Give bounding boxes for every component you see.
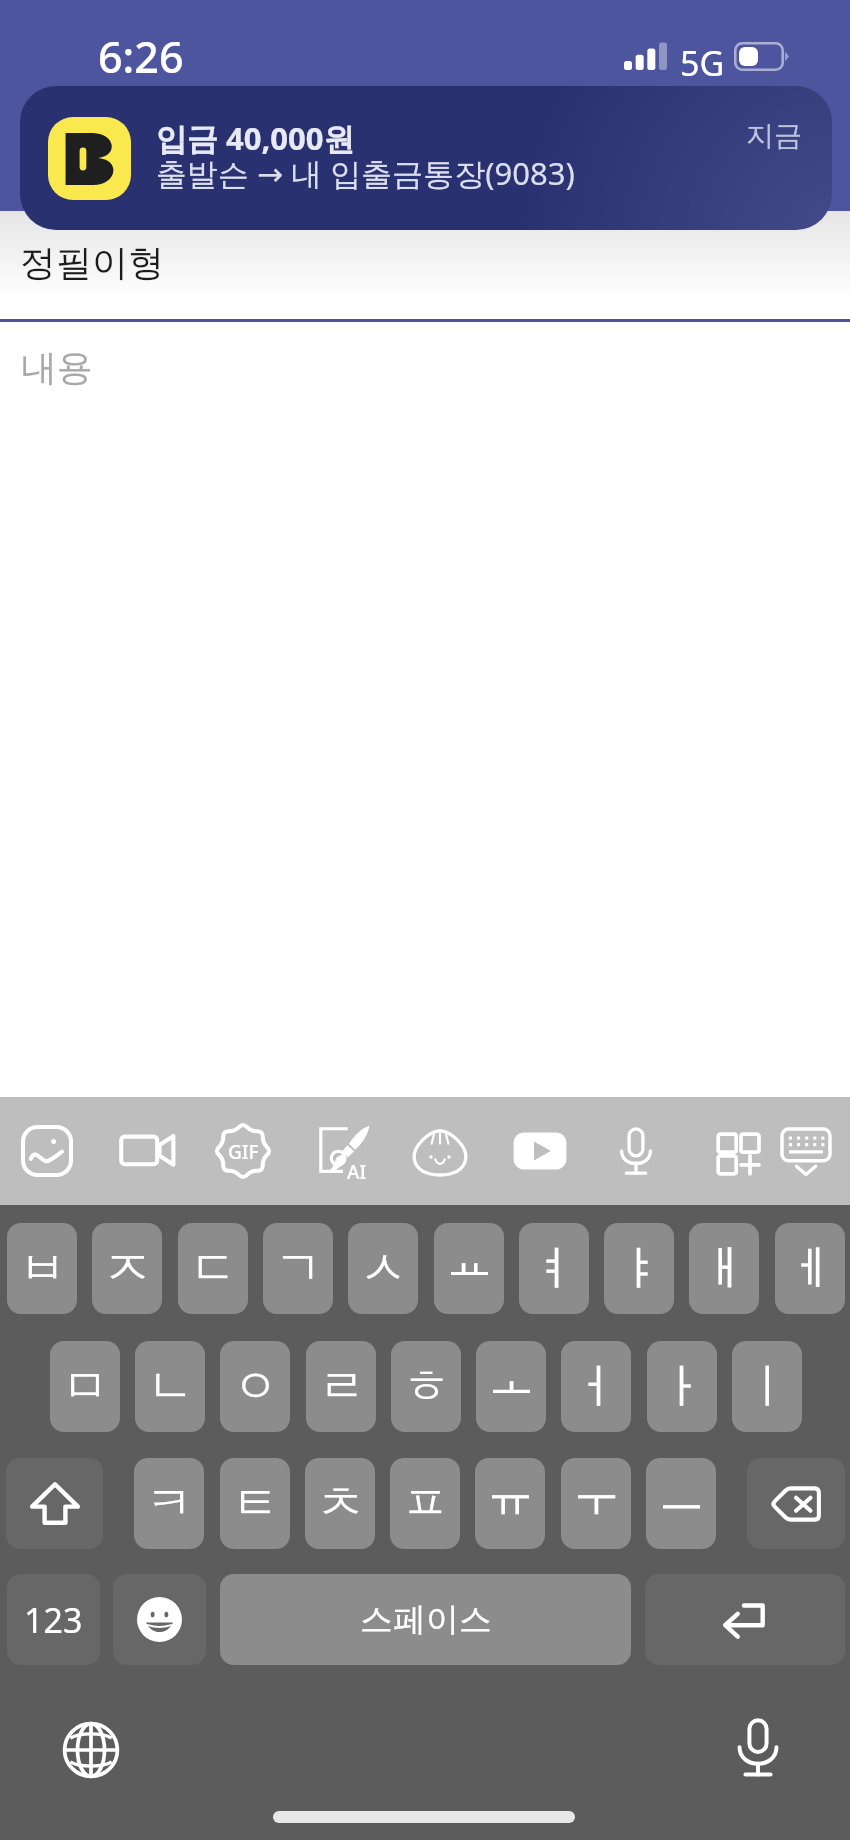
staticText: ㅕ [531, 1239, 578, 1298]
button[interactable]: ㅍ [390, 1458, 460, 1549]
staticText: ㅣ [744, 1357, 791, 1416]
button[interactable]: ㅜ [561, 1458, 631, 1549]
staticText: ㅐ [701, 1239, 748, 1298]
button[interactable]: AI drawing [305, 1109, 381, 1193]
button[interactable]: ㅏ [647, 1341, 717, 1432]
staticText: ㅂ [19, 1239, 66, 1298]
button[interactable]: ㄴ [135, 1341, 205, 1432]
button[interactable]: ㅣ [732, 1341, 802, 1432]
staticText: 내용 [21, 345, 93, 390]
button[interactable]: ㅅ [348, 1223, 418, 1314]
button[interactable]: ㅐ [689, 1223, 759, 1314]
staticText: ㅔ [787, 1239, 834, 1298]
staticText: ㄴ [147, 1357, 194, 1416]
button[interactable]: Photo [9, 1109, 85, 1193]
staticText: AI [347, 1159, 367, 1185]
staticText: ㅅ [360, 1239, 407, 1298]
button[interactable]: Change language [58, 1717, 124, 1783]
button[interactable]: ㅇ [220, 1341, 290, 1432]
button[interactable]: ㅠ [475, 1458, 545, 1549]
staticText: ㅋ [146, 1474, 193, 1533]
button[interactable]: Enter [645, 1574, 845, 1665]
staticText: ㅓ [573, 1357, 620, 1416]
button[interactable]: GIF [205, 1109, 281, 1193]
button[interactable]: 스페이스 [220, 1574, 631, 1665]
button[interactable]: ㅛ [434, 1223, 504, 1314]
button[interactable]: Voice input [723, 1713, 793, 1783]
button[interactable]: ㄱ [263, 1223, 333, 1314]
button[interactable]: Hide keyboard [768, 1109, 844, 1193]
button[interactable]: ㅁ [50, 1341, 120, 1432]
button[interactable]: ㅔ [775, 1223, 845, 1314]
staticText: ㅊ [317, 1474, 364, 1533]
button[interactable]: ㅊ [305, 1458, 375, 1549]
staticText: 123 [24, 1597, 83, 1643]
staticText: ㅛ [446, 1231, 493, 1290]
staticText: ㅜ [573, 1466, 620, 1525]
staticText: GIF [228, 1139, 259, 1165]
button[interactable]: Video clip [502, 1109, 578, 1193]
button[interactable]: ㅑ [604, 1223, 674, 1314]
staticText: ㄷ [190, 1239, 237, 1298]
button[interactable]: ㅕ [519, 1223, 589, 1314]
button[interactable]: ㅡ [646, 1458, 716, 1549]
button[interactable]: ㅈ [92, 1223, 162, 1314]
button[interactable]: Voice [598, 1109, 674, 1193]
staticText: ㅌ [232, 1474, 279, 1533]
staticText: ㅈ [104, 1239, 151, 1298]
button[interactable]: ㅓ [561, 1341, 631, 1432]
button[interactable]: Sticker [402, 1109, 478, 1193]
staticText: ㅑ [616, 1239, 663, 1298]
staticText: 입금 40,000원 [156, 117, 355, 159]
button[interactable]: More apps [697, 1109, 773, 1193]
button[interactable]: ㅗ [476, 1341, 546, 1432]
staticText: 5G [680, 40, 725, 86]
staticText: ㅁ [62, 1357, 109, 1416]
staticText: ㅏ [659, 1357, 706, 1416]
button[interactable]: ㅎ [391, 1341, 461, 1432]
button[interactable]: Emoji [113, 1574, 206, 1665]
staticText: 정필이형 [20, 240, 164, 285]
button[interactable]: ㅌ [220, 1458, 290, 1549]
staticText: ㅠ [487, 1466, 534, 1525]
button[interactable]: Shift [6, 1458, 103, 1549]
staticText: ㅡ [658, 1466, 705, 1525]
button[interactable]: ㄷ [178, 1223, 248, 1314]
button[interactable]: Backspace [747, 1458, 845, 1549]
staticText: ㄹ [318, 1357, 365, 1416]
staticText: 출발슨 → 내 입출금통장(9083) [156, 152, 575, 194]
staticText: ㅍ [402, 1474, 449, 1533]
button[interactable]: Video [109, 1109, 185, 1193]
button[interactable]: 입금 40,000원 [20, 86, 832, 230]
staticText: 스페이스 [360, 1599, 492, 1641]
button[interactable]: ㄹ [306, 1341, 376, 1432]
staticText: ㄱ [275, 1239, 322, 1298]
button[interactable]: ㅂ [7, 1223, 77, 1314]
staticText: ㅎ [403, 1357, 450, 1416]
button[interactable]: 123 [7, 1574, 100, 1665]
staticText: ㅇ [232, 1357, 279, 1416]
staticText: 지금 [746, 118, 802, 153]
button[interactable]: ㅋ [134, 1458, 204, 1549]
staticText: ㅗ [488, 1349, 535, 1408]
staticText: 6:26 [98, 27, 184, 86]
